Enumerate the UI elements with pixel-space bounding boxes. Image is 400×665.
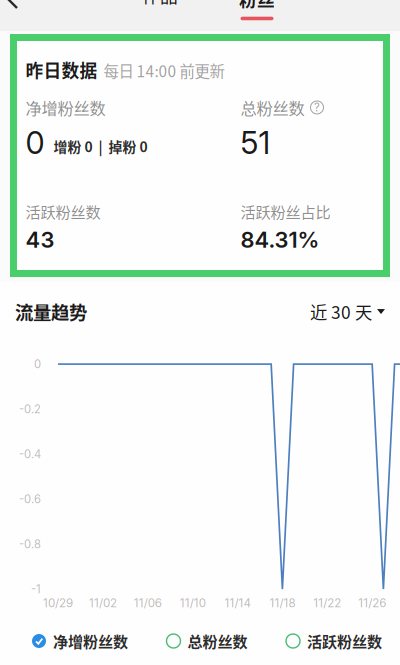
staticText: 11/14 [224, 596, 250, 610]
staticText: 11/26 [358, 596, 386, 610]
staticText: -0.2 [19, 402, 41, 416]
staticText: 粉丝 [239, 0, 275, 12]
staticText: 0 [34, 357, 41, 371]
staticText: 10/29 [43, 596, 73, 610]
staticText: 净增粉丝数 [53, 630, 128, 652]
staticText: -0.6 [19, 492, 41, 506]
staticText: 净增粉丝数 [25, 96, 105, 119]
staticText: 11/22 [313, 596, 341, 610]
staticText: 0 [25, 124, 44, 161]
button[interactable]: 作品 [0, 0, 70, 15]
staticText: 总粉丝数 [187, 630, 247, 652]
staticText: 11/10 [180, 596, 206, 610]
button[interactable]: 总粉丝数 [166, 630, 247, 652]
staticText: 作品 [142, 0, 178, 8]
staticText: -1 [31, 582, 41, 596]
staticText: 流量趋势 [15, 298, 87, 325]
staticText: 总粉丝数 [240, 96, 304, 119]
staticText: 增粉 0 | 掉粉 0 [53, 136, 147, 156]
staticText: 活跃粉丝数 [25, 200, 100, 222]
staticText: 每日 14:00 前更新 [103, 59, 224, 82]
staticText: 51 [240, 124, 270, 161]
staticText: 84.31% [240, 226, 319, 253]
button[interactable]: 净增粉丝数 [32, 630, 128, 652]
staticText: 43 [25, 226, 54, 253]
staticText: 昨日数据 [25, 57, 97, 83]
staticText: -0.4 [19, 447, 41, 461]
staticText: 近 30 天 [310, 299, 372, 324]
staticText: 活跃粉丝数 [307, 630, 382, 652]
staticText: 活跃粉丝占比 [240, 200, 330, 222]
button[interactable]: 返回 [0, 0, 30, 9]
staticText: 11/06 [134, 596, 162, 610]
staticText: -0.8 [19, 537, 41, 551]
button[interactable]: 活跃粉丝数 [286, 630, 382, 652]
staticText: ? [314, 101, 320, 114]
staticText: 11/18 [269, 596, 295, 610]
button[interactable]: 近 30 天 [304, 295, 391, 328]
button[interactable]: 粉丝 [0, 0, 70, 37]
staticText: 11/02 [89, 596, 117, 610]
